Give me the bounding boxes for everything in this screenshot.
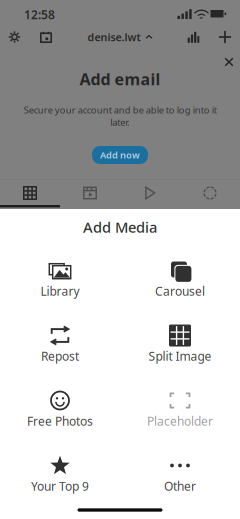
button[interactable]: Free Photos [0, 386, 120, 451]
staticText: Placeholder [147, 413, 213, 429]
button[interactable]: New post [212, 24, 238, 50]
button[interactable]: Placeholder [120, 386, 240, 451]
staticText: Secure your account and be able to log i… [23, 104, 216, 128]
button[interactable]: Split Image [120, 321, 240, 386]
staticText: Add Media [83, 217, 157, 237]
button[interactable]: Insights [180, 24, 206, 50]
button[interactable]: Settings [1, 24, 27, 50]
button[interactable]: Grid [0, 179, 60, 207]
button[interactable]: Videos [120, 179, 180, 207]
staticText: Other [164, 478, 196, 494]
staticText: Your Top 9 [31, 478, 89, 494]
staticText: Split Image [148, 348, 211, 364]
staticText: Add now [100, 149, 140, 161]
button[interactable]: Carousel [120, 256, 240, 321]
staticText: Add email [79, 68, 160, 90]
button[interactable]: Calendar [33, 24, 59, 50]
button[interactable]: Reels [60, 179, 120, 207]
button[interactable]: Your Top 9 [0, 451, 120, 516]
button[interactable]: Tagged [180, 179, 240, 207]
staticText: Free Photos [27, 413, 93, 429]
staticText: Carousel [155, 283, 205, 299]
button[interactable]: Add now [92, 146, 148, 164]
button[interactable]: Other [120, 451, 240, 516]
button[interactable]: denise.lwt [87, 24, 152, 50]
staticText: 12:58 [24, 6, 55, 22]
button[interactable]: Repost [0, 321, 120, 386]
button[interactable]: Library [0, 256, 120, 321]
button[interactable]: Dismiss [218, 52, 240, 72]
staticText: denise.lwt [87, 30, 140, 44]
staticText: Library [40, 283, 79, 299]
staticText: Repost [41, 348, 79, 364]
